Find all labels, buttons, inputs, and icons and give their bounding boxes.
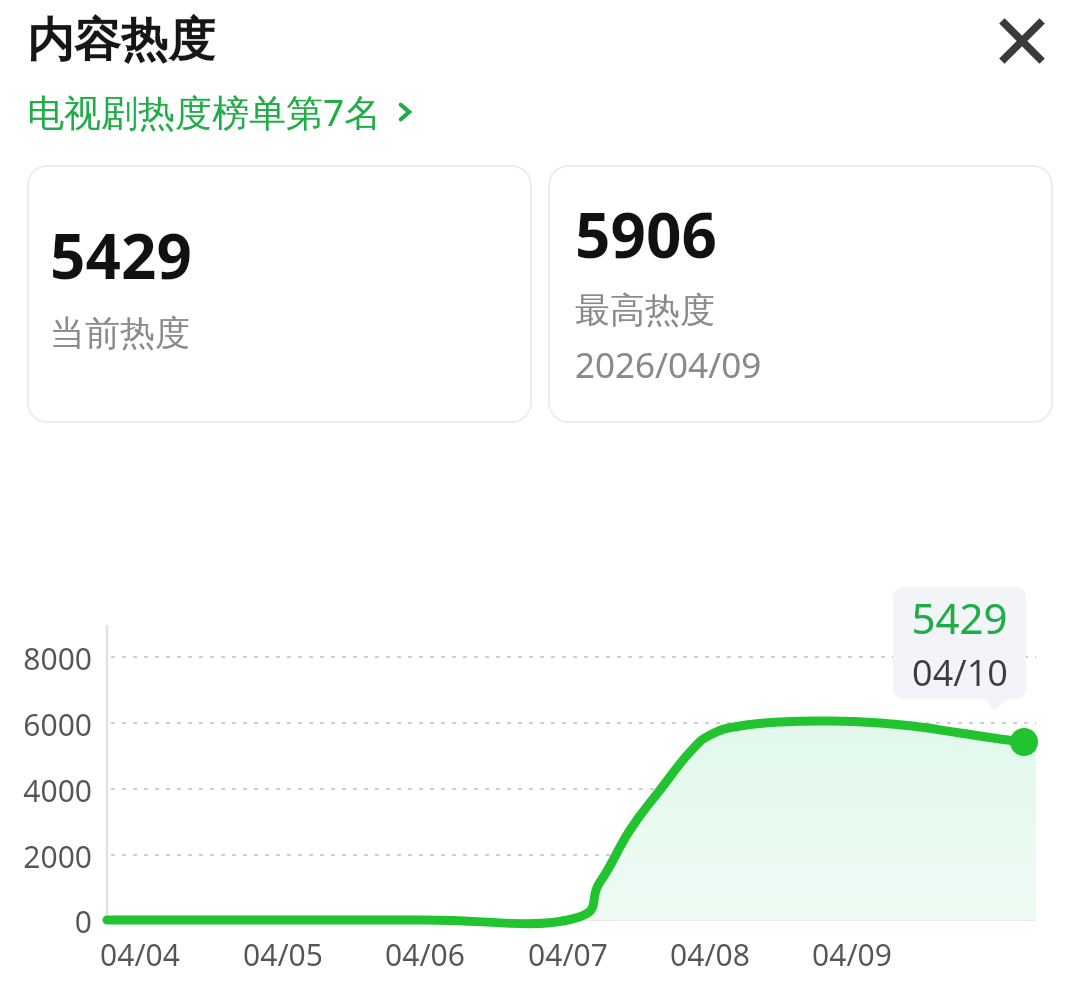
staticText: 6000: [23, 704, 92, 745]
staticText: 4000: [23, 770, 92, 811]
staticText: 5429: [50, 213, 192, 297]
staticText: 04/05: [243, 934, 323, 975]
staticText: 5429: [911, 589, 1008, 646]
staticText: 8000: [23, 638, 92, 679]
staticText: 04/06: [385, 934, 465, 975]
staticText: 2000: [23, 836, 92, 877]
staticText: 2026/04/09: [575, 341, 762, 389]
staticText: 最高热度: [575, 288, 715, 332]
button[interactable]: 电视剧热度榜单第7名: [27, 86, 418, 137]
staticText: 5906: [575, 192, 717, 276]
button[interactable]: 5429: [27, 165, 532, 423]
button[interactable]: 5906: [548, 165, 1053, 423]
staticText: 当前热度: [50, 311, 190, 355]
staticText: 04/04: [100, 934, 180, 975]
button[interactable]: 5429: [893, 587, 1026, 699]
staticText: 电视剧热度榜单第7名: [27, 86, 382, 137]
staticText: 04/10: [912, 648, 1008, 697]
staticText: 04/08: [670, 934, 750, 975]
button[interactable]: Close: [985, 4, 1059, 78]
staticText: 0: [74, 901, 92, 942]
staticText: 04/07: [528, 934, 608, 975]
staticText: 04/09: [812, 934, 892, 975]
staticText: 内容热度: [27, 11, 215, 70]
